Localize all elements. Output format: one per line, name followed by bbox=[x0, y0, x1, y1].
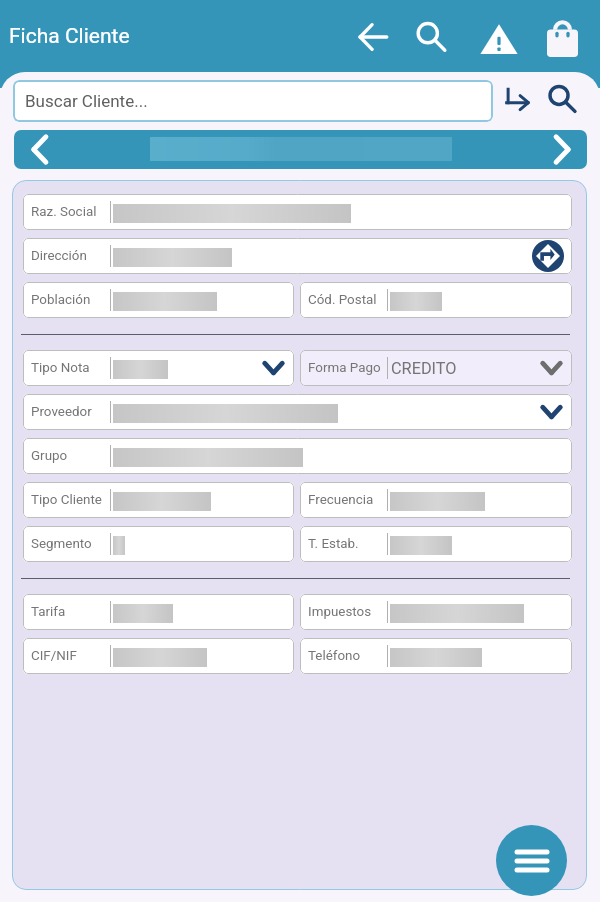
button[interactable]: Segmento bbox=[23, 526, 294, 562]
button[interactable]: Search client bbox=[542, 79, 582, 119]
button[interactable]: Previous bbox=[14, 130, 64, 169]
staticText: Grupo bbox=[31, 448, 68, 464]
staticText: Tarifa bbox=[31, 604, 66, 620]
staticText: CREDITO bbox=[391, 359, 457, 378]
staticText: Forma Pago bbox=[308, 360, 381, 376]
button[interactable]: Search bbox=[409, 15, 453, 59]
button[interactable]: Impuestos bbox=[300, 594, 572, 630]
staticText: T. Estab. bbox=[308, 536, 359, 552]
button[interactable]: Next bbox=[537, 130, 587, 169]
button[interactable]: Raz. Social bbox=[23, 194, 572, 230]
staticText: Tipo Nota bbox=[31, 360, 90, 376]
button[interactable]: Proveedor bbox=[23, 394, 572, 430]
staticText: Buscar Cliente... bbox=[25, 91, 148, 111]
staticText: Tipo Cliente bbox=[31, 492, 102, 508]
staticText: Ficha Cliente bbox=[9, 24, 130, 49]
staticText: Proveedor bbox=[31, 404, 92, 420]
button[interactable]: T. Estab. bbox=[300, 526, 572, 562]
staticText: Raz. Social bbox=[31, 204, 97, 220]
button[interactable]: Grupo bbox=[23, 438, 572, 474]
staticText: Población bbox=[31, 292, 91, 308]
button[interactable]: Enter bbox=[498, 79, 538, 119]
button[interactable]: Frecuencia bbox=[300, 482, 572, 518]
staticText: Segmento bbox=[31, 536, 92, 552]
button[interactable]: Warning bbox=[477, 17, 521, 61]
button[interactable]: Forma Pago bbox=[300, 350, 572, 386]
button[interactable]: Buscar Cliente... bbox=[13, 80, 493, 122]
staticText: Impuestos bbox=[308, 604, 372, 620]
button[interactable]: Shop bbox=[540, 16, 584, 60]
staticText: Teléfono bbox=[308, 648, 361, 664]
button[interactable]: Back bbox=[351, 15, 395, 59]
button[interactable]: CIF/NIF bbox=[23, 638, 294, 674]
staticText: Frecuencia bbox=[308, 492, 374, 508]
button[interactable]: Tipo Cliente bbox=[23, 482, 294, 518]
button[interactable]: Teléfono bbox=[300, 638, 572, 674]
button[interactable]: Menu bbox=[496, 825, 567, 896]
staticText: Cód. Postal bbox=[308, 292, 377, 308]
button[interactable]: Población bbox=[23, 282, 294, 318]
button[interactable]: Dirección bbox=[23, 238, 572, 274]
button[interactable]: Tipo Nota bbox=[23, 350, 294, 386]
button[interactable]: Cód. Postal bbox=[300, 282, 572, 318]
staticText: Dirección bbox=[31, 248, 87, 264]
button[interactable]: Tarifa bbox=[23, 594, 294, 630]
staticText: CIF/NIF bbox=[31, 648, 77, 664]
